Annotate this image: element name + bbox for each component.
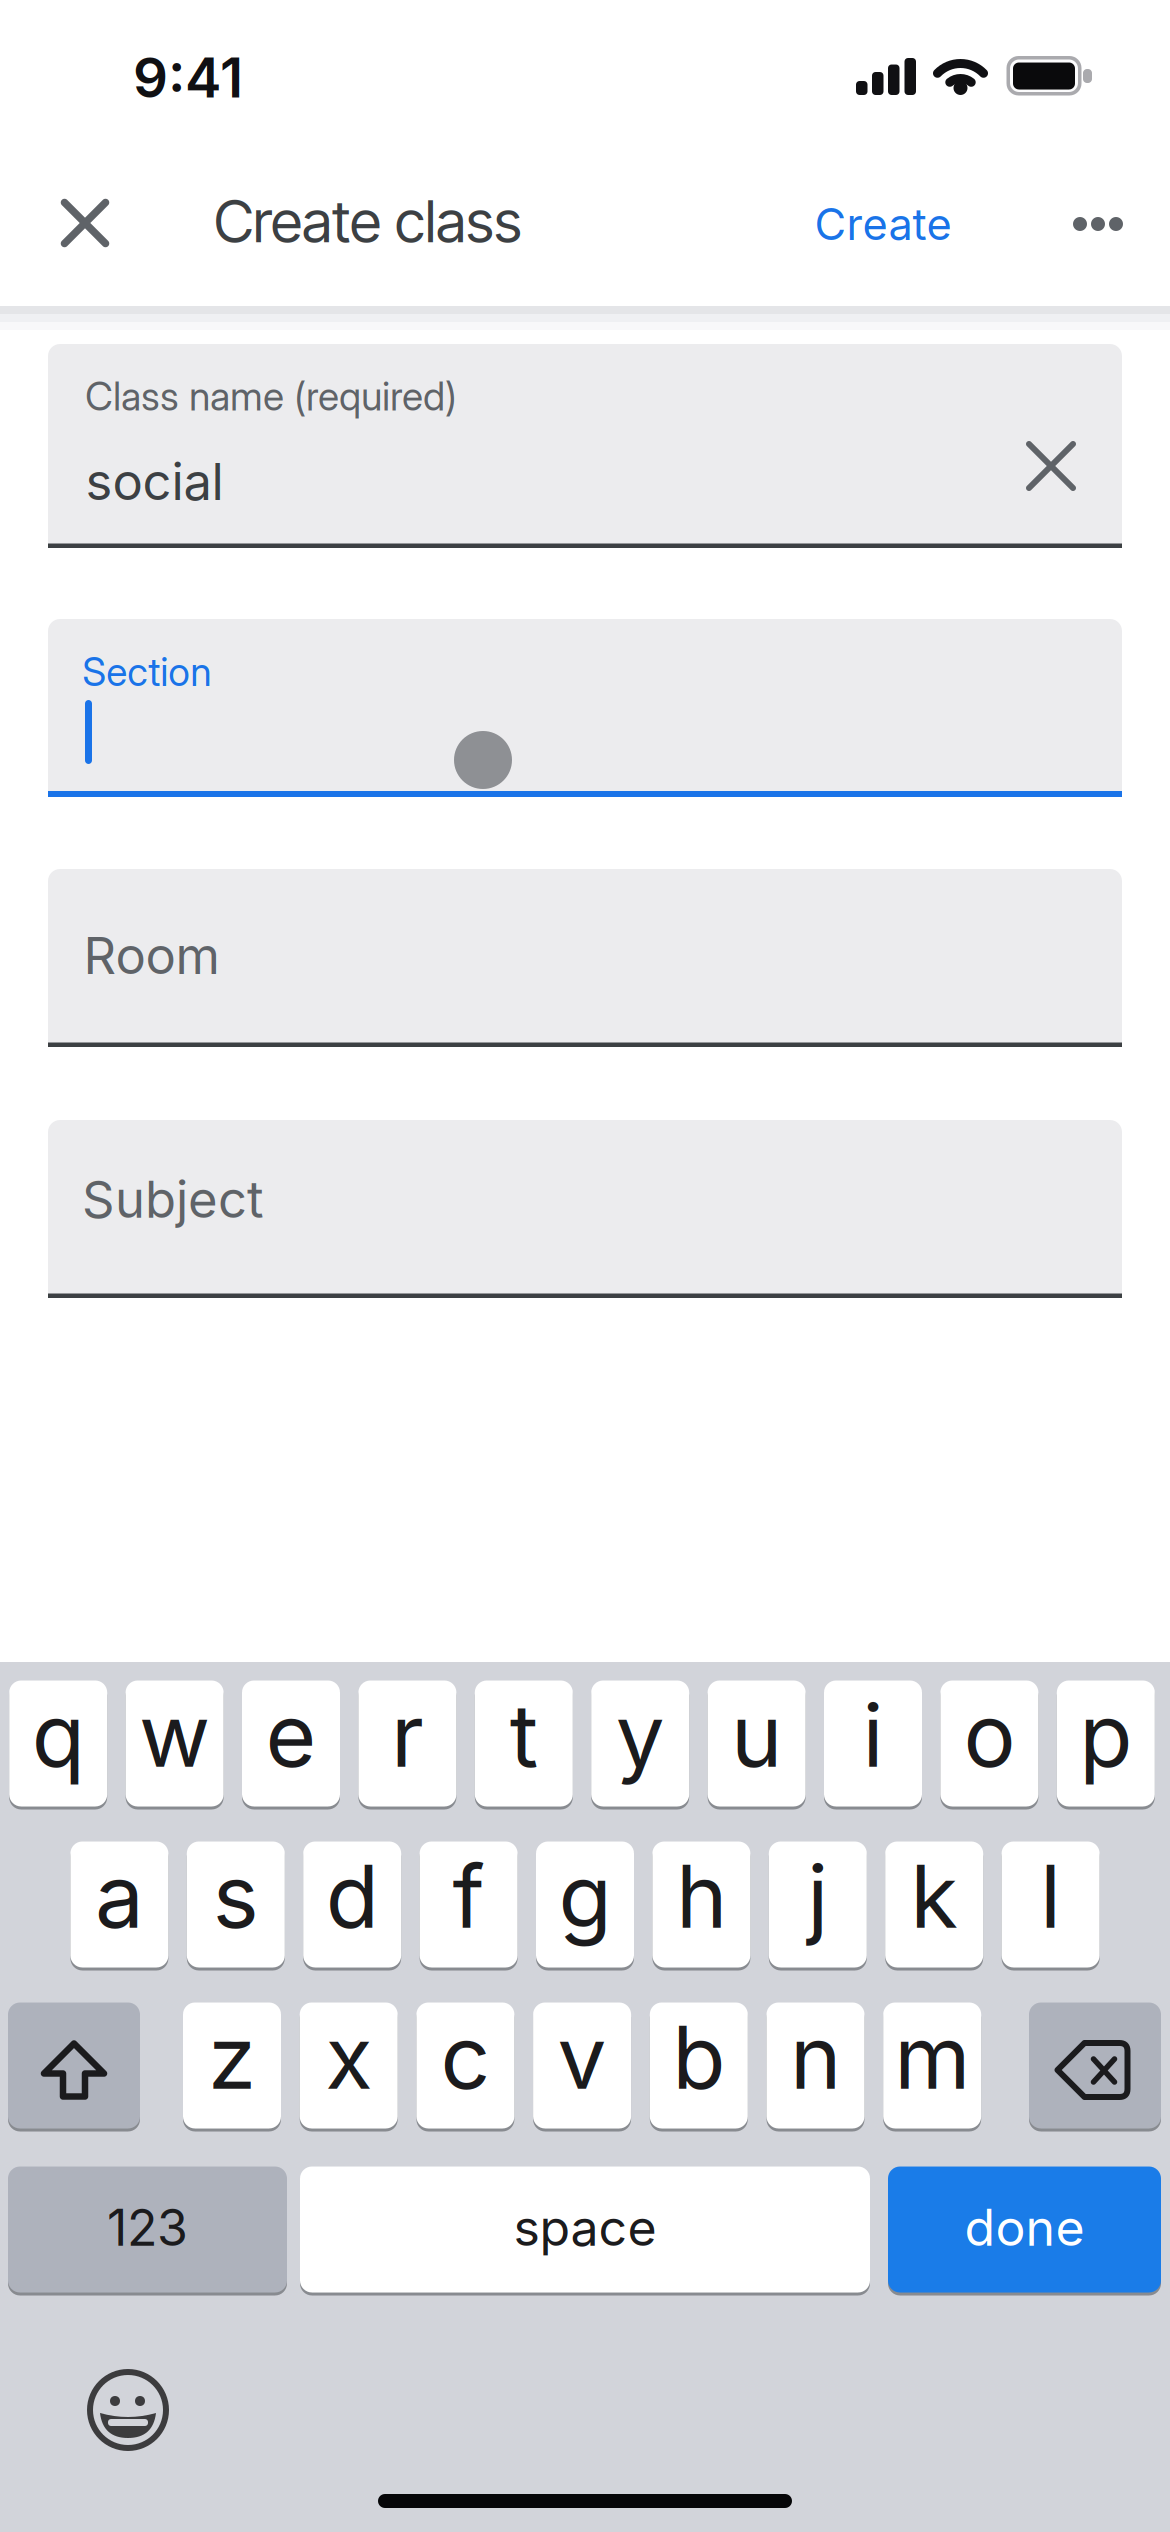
staticText: Subject [82,1169,264,1230]
button[interactable]: d [303,1841,401,1970]
staticText: i [862,1682,883,1788]
button[interactable]: Emoji [80,2362,176,2458]
staticText: e [265,1682,316,1788]
button[interactable]: Delete [1029,2002,1161,2131]
button[interactable]: s [187,1841,285,1970]
button[interactable]: space [300,2166,870,2295]
staticText: Room [83,925,219,986]
button[interactable]: o [940,1680,1038,1809]
staticText: q [32,1682,85,1788]
button[interactable]: i [824,1680,922,1809]
button[interactable]: Create [795,184,972,264]
staticText: 123 [107,2197,188,2258]
button[interactable]: t [475,1680,573,1809]
staticText: Class name (required) [85,373,457,420]
button[interactable]: r [358,1680,456,1809]
staticText: c [440,2004,490,2110]
staticText: z [208,2004,256,2110]
button[interactable]: q [9,1680,107,1809]
staticText: w [139,1682,210,1788]
staticText: Create class [214,186,522,256]
button[interactable]: Close [41,179,129,267]
staticText: Create [815,198,952,250]
button[interactable]: b [650,2002,748,2131]
staticText: y [616,1682,665,1788]
button[interactable]: n [766,2002,864,2131]
staticText: o [963,1682,1015,1788]
staticText: h [676,1843,727,1949]
button[interactable]: Shift [8,2002,140,2131]
button[interactable]: j [769,1841,867,1970]
staticText: Section [82,649,211,695]
staticText: p [1079,1682,1132,1788]
staticText: f [453,1843,485,1949]
button[interactable]: g [536,1841,634,1970]
staticText: social [85,451,223,512]
button[interactable]: v [533,2002,631,2131]
staticText: b [672,2004,725,2110]
button[interactable]: h [652,1841,750,1970]
button[interactable]: c [416,2002,514,2131]
button[interactable]: k [885,1841,983,1970]
staticText: space [513,2197,656,2258]
staticText: m [894,2004,970,2110]
button[interactable]: p [1057,1680,1155,1809]
button[interactable]: l [1002,1841,1100,1970]
button[interactable]: w [126,1680,224,1809]
button[interactable]: m [883,2002,981,2131]
staticText: n [790,2004,841,2110]
staticText: s [213,1843,259,1949]
button[interactable]: Room [48,869,1122,1047]
staticText: a [95,1843,144,1949]
button[interactable]: Clear text [1003,418,1099,514]
button[interactable]: u [708,1680,806,1809]
button[interactable]: z [183,2002,281,2131]
staticText: t [510,1682,538,1788]
button[interactable]: Subject [48,1120,1122,1298]
staticText: k [910,1843,958,1949]
staticText: 9:41 [133,44,243,111]
staticText: j [807,1843,828,1949]
button[interactable]: f [420,1841,518,1970]
staticText: v [558,2004,607,2110]
staticText: r [391,1682,424,1788]
button[interactable]: e [242,1680,340,1809]
staticText: x [325,2004,372,2110]
button[interactable]: done [888,2166,1161,2295]
button[interactable]: More options [1058,184,1138,264]
button[interactable]: Section [48,619,1122,797]
button[interactable]: Class name (required) [48,344,1122,548]
staticText: l [1040,1843,1061,1949]
staticText: g [558,1843,611,1949]
button[interactable]: 123 [8,2166,287,2295]
staticText: u [731,1682,782,1788]
staticText: done [964,2197,1084,2258]
button[interactable]: y [591,1680,689,1809]
staticText: d [326,1843,379,1949]
button[interactable]: x [300,2002,398,2131]
button[interactable]: a [70,1841,168,1970]
